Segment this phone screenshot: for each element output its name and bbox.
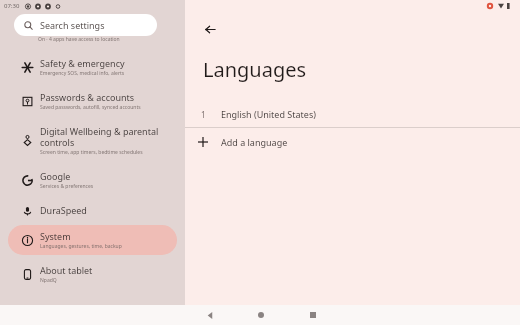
staticText: 07:30: [4, 2, 20, 10]
staticText: Digital Wellbeing & parental controls: [40, 125, 171, 148]
staticText: Google: [40, 170, 71, 182]
button[interactable]: About tablet: [8, 259, 177, 289]
button[interactable]: Add a language: [185, 128, 520, 156]
staticText: Services & preferences: [40, 183, 94, 190]
button[interactable]: Recent apps: [287, 305, 339, 325]
staticText: Safety & emergency: [40, 57, 125, 69]
staticText: On · 4 apps have access to location: [38, 36, 120, 43]
button[interactable]: 1: [185, 101, 520, 127]
staticText: Languages, gestures, time, backup: [40, 243, 122, 250]
button[interactable]: Passwords & accounts: [8, 86, 177, 116]
button[interactable]: Google: [8, 165, 177, 195]
staticText: About tablet: [40, 264, 93, 276]
button[interactable]: DuraSpeed: [8, 199, 177, 221]
button[interactable]: Back: [185, 305, 235, 325]
staticText: Screen time, app timers, bedtime schedul…: [40, 149, 143, 156]
staticText: Passwords & accounts: [40, 91, 135, 103]
staticText: System: [40, 230, 71, 242]
button[interactable]: Search settings: [14, 14, 157, 36]
button[interactable]: Digital Wellbeing & parental controls: [8, 120, 177, 161]
button[interactable]: System: [8, 225, 177, 255]
staticText: Search settings: [40, 19, 105, 31]
staticText: DuraSpeed: [40, 204, 87, 216]
staticText: 1: [201, 109, 206, 120]
staticText: Languages: [203, 56, 307, 83]
staticText: English (United States): [221, 108, 316, 120]
button[interactable]: Safety & emergency: [8, 52, 177, 82]
button[interactable]: Home: [235, 305, 287, 325]
staticText: Saved passwords, autofill, synced accoun…: [40, 104, 141, 111]
staticText: Add a language: [221, 136, 288, 148]
staticText: Emergency SOS, medical info, alerts: [40, 70, 125, 77]
staticText: NpadQ: [40, 277, 57, 284]
button[interactable]: Back: [199, 18, 221, 40]
